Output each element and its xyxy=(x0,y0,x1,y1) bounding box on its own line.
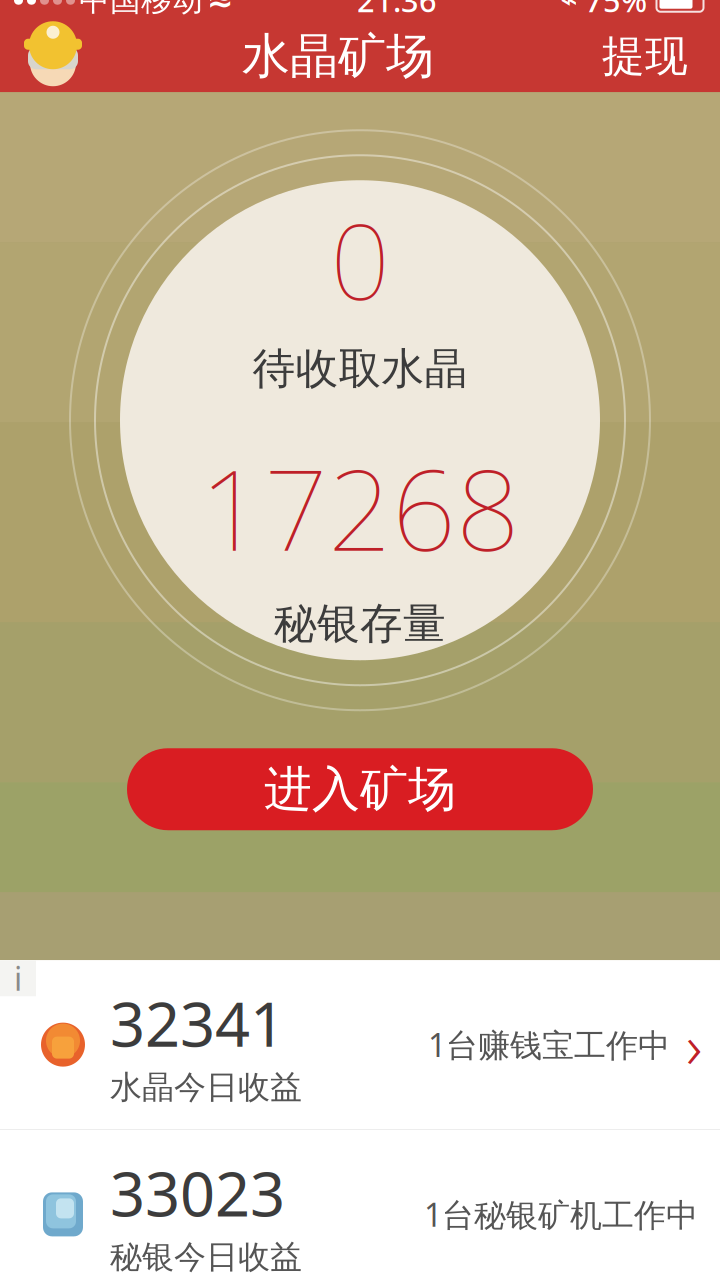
staticText: 中国移动 xyxy=(79,0,203,19)
staticText: i xyxy=(14,957,22,999)
staticText: 进入矿场 xyxy=(264,760,456,819)
button[interactable]: 32341 xyxy=(0,960,720,1129)
staticText: 秘银存量 xyxy=(274,598,446,650)
staticText: 水晶今日收益 xyxy=(110,1068,302,1107)
staticText: 75% xyxy=(585,0,647,21)
staticText: 提现 xyxy=(602,30,688,82)
staticText: 21:36 xyxy=(357,0,437,21)
staticText: 待收取水晶 xyxy=(252,342,467,395)
staticText: 17268 xyxy=(200,433,520,582)
button[interactable]: 个人中心 xyxy=(10,20,96,92)
staticText: ⌁ xyxy=(560,0,578,17)
staticText: 32341 xyxy=(110,982,285,1064)
staticText: ≈ xyxy=(207,0,234,18)
staticText: 1台赚钱宝工作中 xyxy=(428,1023,670,1066)
staticText: 水晶矿场 xyxy=(242,27,434,86)
button[interactable]: 说明 xyxy=(0,960,36,996)
button[interactable]: 提现 xyxy=(580,20,710,92)
staticText: 33023 xyxy=(110,1152,285,1233)
staticText: › xyxy=(686,1004,702,1085)
button[interactable]: 33023 xyxy=(0,1130,720,1280)
staticText: 秘银今日收益 xyxy=(110,1237,302,1277)
staticText: 1台秘银矿机工作中 xyxy=(424,1193,698,1236)
button[interactable]: 进入矿场 xyxy=(127,748,593,830)
staticText: 0 xyxy=(330,190,389,328)
